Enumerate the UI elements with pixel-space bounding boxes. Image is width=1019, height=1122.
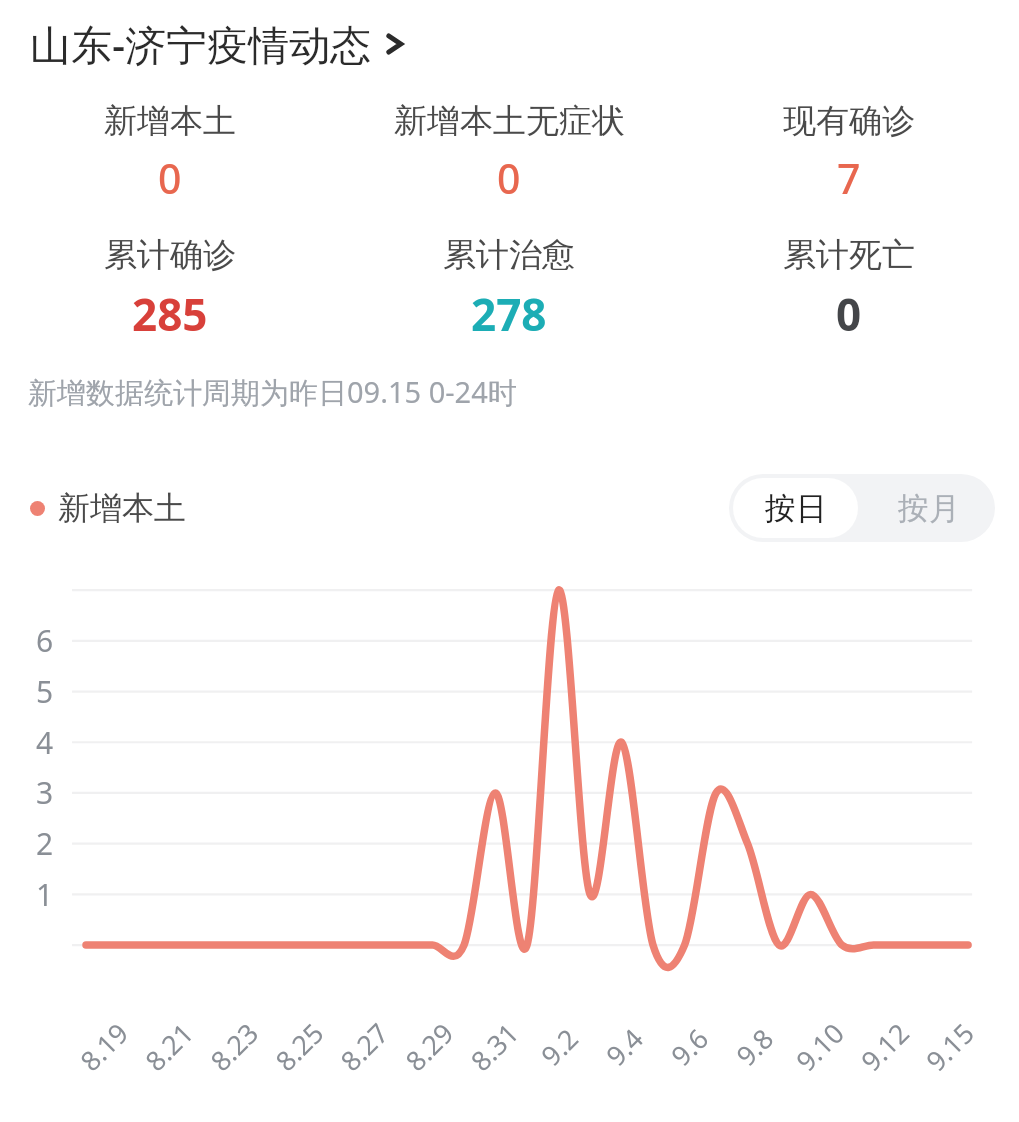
staticText: 累计治愈 [443,234,575,276]
button[interactable]: 按月 [862,474,995,542]
button[interactable]: 累计死亡 [679,234,1019,344]
staticText: 278 [471,284,547,344]
staticText: 累计死亡 [783,234,915,276]
staticText: 0 [497,150,521,206]
staticText: 新增本土 [104,100,236,142]
staticText: 按日 [765,489,827,528]
staticText: 累计确诊 [104,234,236,276]
staticText: 山东-济宁疫情动态 [30,16,372,72]
button[interactable]: 按日 [733,478,858,538]
button[interactable]: 新增本土 [30,488,186,528]
button[interactable]: 现有确诊 [679,100,1019,206]
button[interactable]: 山东-济宁疫情动态 [0,0,1019,78]
staticText: 现有确诊 [783,100,915,142]
staticText: 新增数据统计周期为昨日09.15 0-24时 [28,372,517,412]
staticText: 新增本土 [58,488,186,528]
button[interactable]: 新增本土 [0,100,339,206]
button[interactable]: 新增本土无症状 [339,100,679,206]
staticText: 285 [132,284,208,344]
staticText: 7 [837,150,861,206]
staticText: 0 [158,150,182,206]
other: Open details [384,28,406,60]
button[interactable]: 累计确诊 [0,234,339,344]
staticText: 按月 [898,489,960,528]
button[interactable]: 累计治愈 [339,234,679,344]
staticText: 新增本土无症状 [394,100,625,142]
staticText: 0 [836,284,862,344]
